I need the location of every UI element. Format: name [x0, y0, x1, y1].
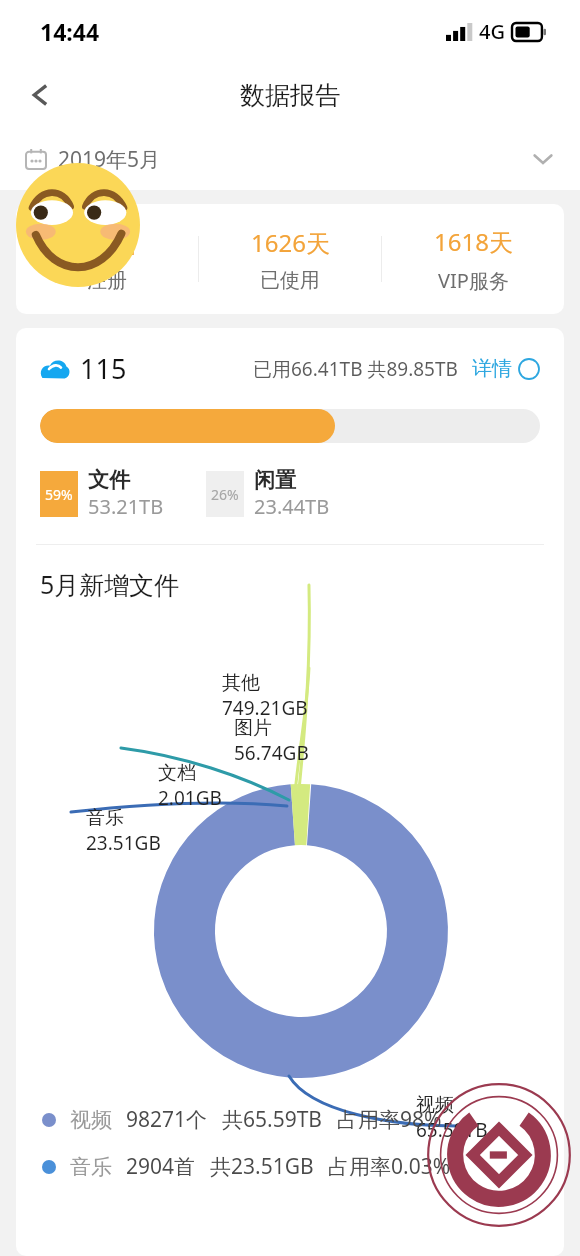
staticText: 2904首 — [126, 1152, 196, 1181]
staticText: 23.51GB — [86, 830, 161, 856]
button[interactable]: 1618天 — [382, 204, 564, 314]
staticText: 共23.51GB — [210, 1152, 314, 1181]
staticText: 占用率0.03% — [328, 1152, 451, 1181]
staticText: 26% — [211, 485, 239, 504]
staticText: 23.44TB — [254, 493, 330, 520]
staticText: 音乐 — [86, 806, 124, 830]
staticText: 2.01GB — [158, 785, 222, 811]
button[interactable]: Back — [12, 67, 68, 123]
staticText: 数据报告 — [240, 80, 340, 111]
staticText: 共65.59TB — [222, 1105, 323, 1134]
staticText: 5月新增文件 — [40, 567, 180, 601]
staticText: 其他 — [222, 671, 260, 695]
staticText: 56.74GB — [234, 740, 309, 766]
staticText: 65.59TB — [416, 1117, 488, 1143]
staticText: 98271个 — [126, 1105, 208, 1134]
button[interactable]: 1626天 — [199, 204, 381, 314]
staticText: 占用率98% — [337, 1105, 442, 1134]
staticText: 月7日 — [76, 226, 138, 259]
staticText: 文档 — [158, 761, 196, 785]
staticText: 视频 — [70, 1107, 112, 1133]
staticText: 749.21GB — [222, 695, 308, 721]
staticText: 1626天 — [251, 226, 330, 259]
button[interactable]: 2019年5月 — [0, 128, 580, 190]
staticText: 2019年5月 — [58, 145, 161, 174]
staticText: 图片 — [234, 716, 272, 740]
staticText: 53.21TB — [88, 493, 164, 520]
staticText: 1618天 — [434, 225, 513, 258]
staticText: 已用66.41TB 共89.85TB — [253, 356, 458, 382]
staticText: VIP服务 — [438, 267, 509, 294]
staticText: 视频 — [416, 1093, 454, 1117]
button[interactable]: 月7日 — [16, 204, 198, 314]
staticText: 已使用 — [260, 268, 320, 293]
staticText: 文件 — [88, 467, 130, 493]
button[interactable]: 详情 — [472, 356, 540, 381]
staticText: 4G — [479, 18, 505, 45]
staticText: 音乐 — [70, 1154, 112, 1180]
staticText: 59% — [45, 485, 73, 504]
staticText: 注册 — [87, 268, 127, 293]
button[interactable]: 音乐 — [42, 1152, 564, 1181]
button[interactable]: 视频 — [42, 1105, 564, 1134]
button[interactable]: 26% — [206, 467, 330, 520]
staticText: 14:44 — [40, 16, 100, 47]
staticText: 详情 — [472, 356, 512, 381]
staticText: 闲置 — [254, 467, 296, 493]
staticText: 115 — [80, 350, 127, 387]
button[interactable]: 59% — [40, 467, 164, 520]
